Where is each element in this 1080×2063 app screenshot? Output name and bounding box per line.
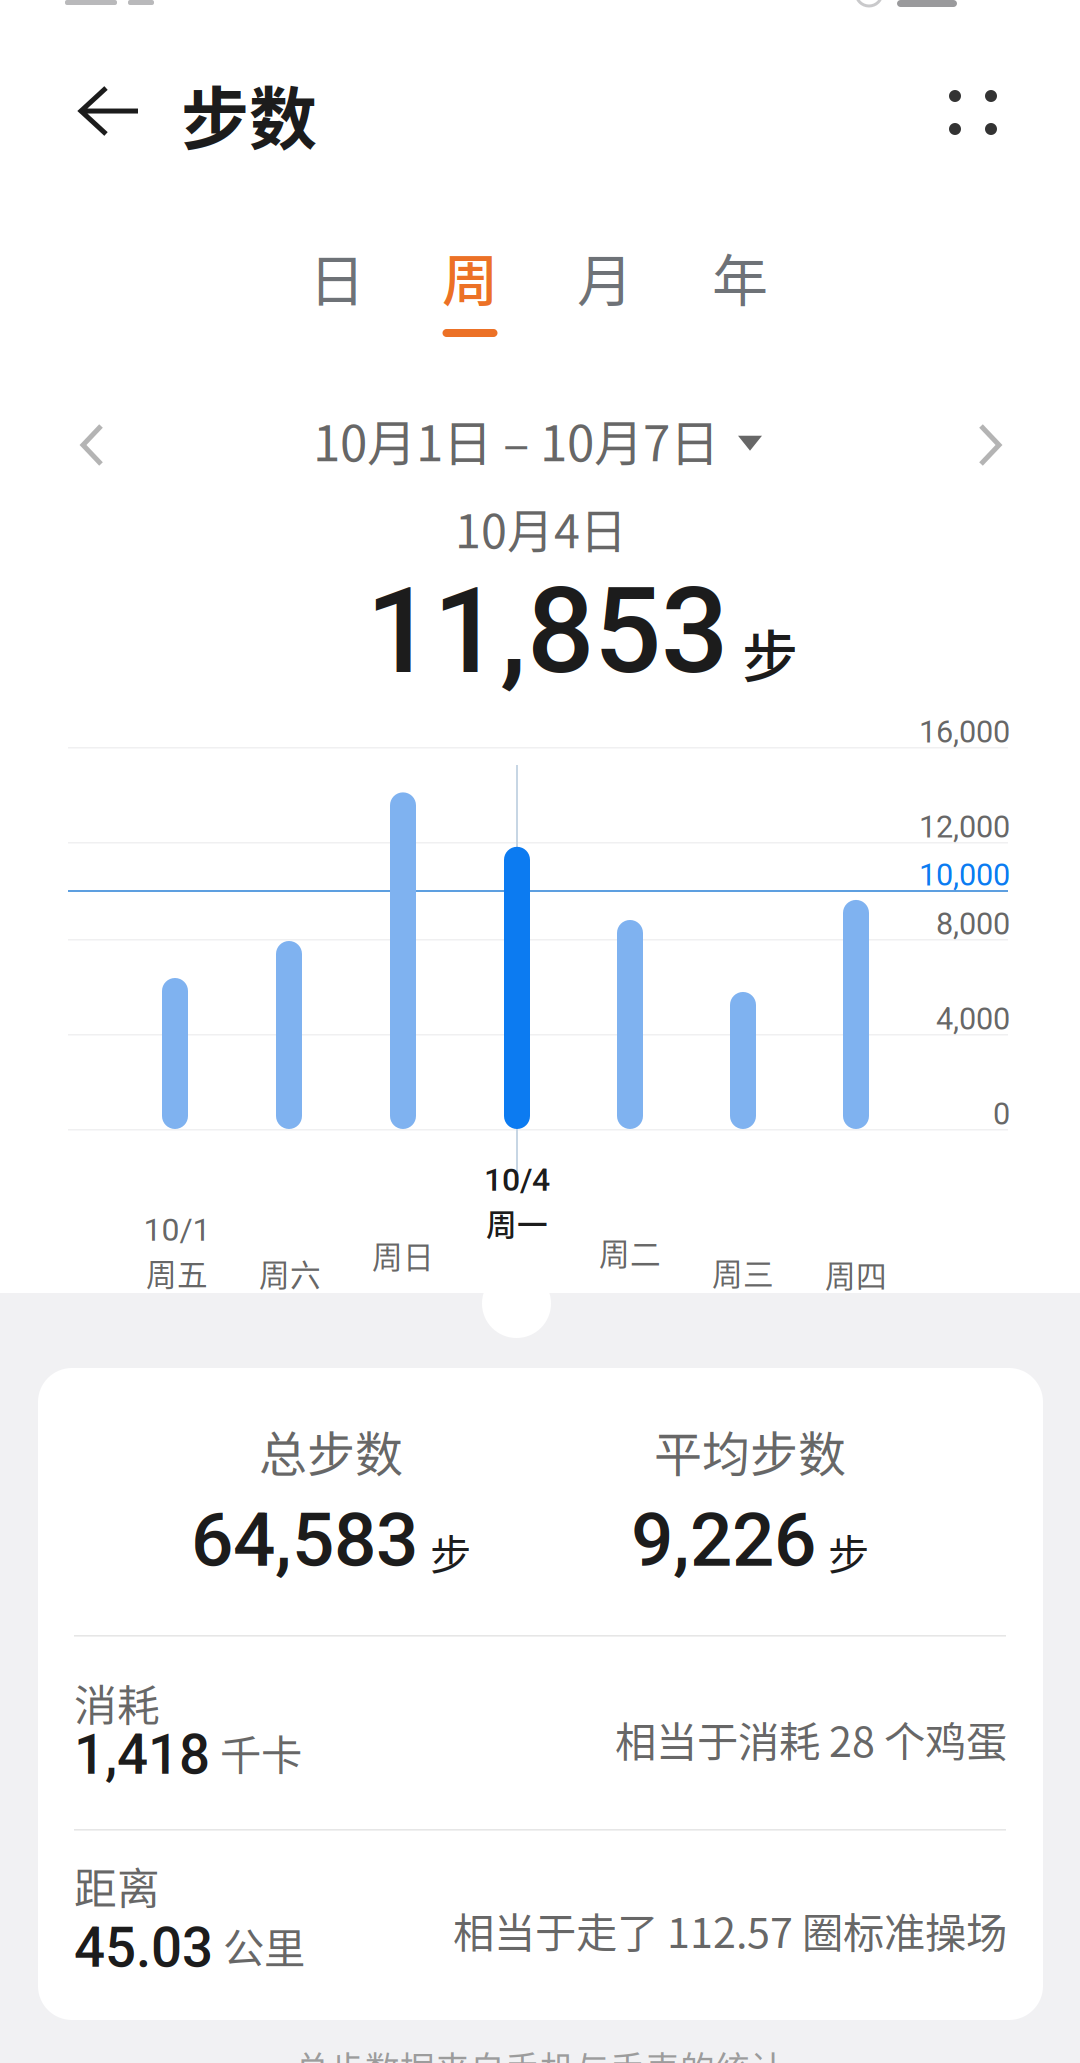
staticText: 距离: [74, 1855, 160, 1917]
button[interactable]: More options: [920, 66, 1020, 166]
staticText: 周一: [486, 1200, 548, 1245]
staticText: 16,000: [919, 714, 1010, 750]
staticText: 周二: [599, 1230, 661, 1274]
staticText: 9,226: [631, 1496, 816, 1584]
button[interactable]: Previous week: [48, 401, 138, 491]
staticText: 64,583: [191, 1496, 418, 1584]
staticText: 45.03: [74, 1916, 213, 1980]
staticText: 0: [993, 1096, 1010, 1132]
staticText: 4,000: [936, 1001, 1010, 1037]
staticText: 步: [828, 1522, 869, 1582]
staticText: 平均步数: [654, 1416, 846, 1485]
staticText: 总步数据来自手机与手表的统计: [295, 2042, 785, 2063]
staticText: 公里: [223, 1915, 305, 1975]
staticText: 周三: [712, 1250, 774, 1294]
staticText: 相当于消耗 28 个鸡蛋: [615, 1709, 1007, 1769]
staticText: 日: [309, 236, 365, 317]
staticText: 1,418: [74, 1723, 210, 1787]
staticText: 年: [712, 236, 768, 317]
staticText: 10,000: [919, 857, 1010, 893]
staticText: 周四: [825, 1252, 887, 1296]
staticText: 12,000: [919, 809, 1010, 845]
button[interactable]: 日: [277, 230, 397, 340]
staticText: 10月4日: [455, 494, 627, 562]
staticText: 月: [577, 236, 633, 317]
staticText: 步: [430, 1522, 471, 1582]
button[interactable]: Back: [50, 66, 160, 166]
staticText: 10/1: [143, 1211, 210, 1248]
staticText: 11,853: [366, 562, 728, 701]
staticText: 步: [742, 612, 798, 693]
staticText: 10/4: [484, 1161, 550, 1198]
button[interactable]: 月: [545, 230, 665, 340]
staticText: 消耗: [74, 1672, 160, 1734]
staticText: 步数: [181, 65, 317, 163]
staticText: 千卡: [220, 1722, 302, 1782]
button[interactable]: 10月1日 – 10月7日: [313, 394, 763, 485]
staticText: 周六: [259, 1251, 321, 1295]
staticText: 周五: [146, 1250, 208, 1295]
button[interactable]: 年: [680, 230, 800, 340]
staticText: 总步数: [259, 1416, 403, 1485]
button[interactable]: 周: [410, 230, 530, 340]
staticText: 周日: [372, 1233, 434, 1277]
button[interactable]: Next week: [942, 401, 1032, 491]
staticText: 相当于走了 112.57 圈标准操场: [453, 1900, 1007, 1960]
staticText: 周: [442, 236, 498, 317]
staticText: 8,000: [936, 906, 1010, 942]
staticText: 10月1日 – 10月7日: [313, 404, 719, 475]
